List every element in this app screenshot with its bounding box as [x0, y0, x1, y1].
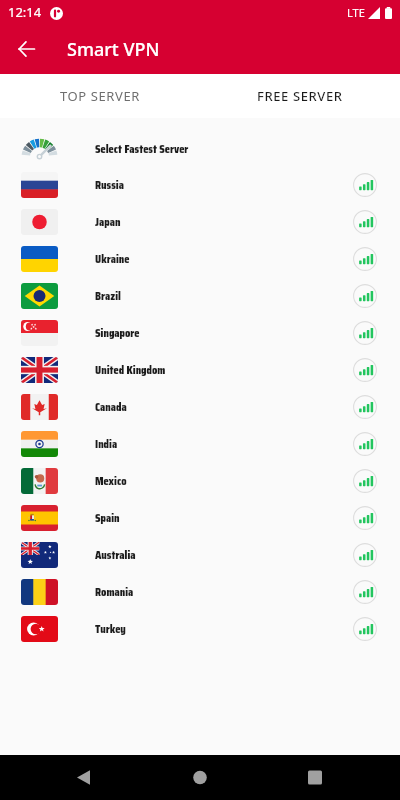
staticText: Mexico [95, 473, 127, 490]
button[interactable]: Mexico [0, 462, 400, 499]
button[interactable]: Signal Japan [346, 203, 384, 240]
staticText: United Kingdom [95, 362, 166, 379]
button[interactable]: India [0, 425, 400, 462]
staticText: Ukraine [95, 251, 130, 268]
staticText: Smart VPN [67, 37, 160, 62]
button[interactable]: United Kingdom [0, 351, 400, 388]
button[interactable]: Signal Brazil [346, 277, 384, 314]
staticText: Romania [95, 584, 134, 601]
button[interactable]: Signal Russia [346, 166, 384, 203]
button[interactable]: Brazil [0, 277, 400, 314]
button[interactable]: Australia [0, 536, 400, 573]
button[interactable]: Back [8, 31, 44, 67]
button[interactable]: Signal India [346, 425, 384, 462]
staticText: Japan [95, 214, 121, 231]
button[interactable]: Signal United Kingdom [346, 351, 384, 388]
button[interactable]: Romania [0, 573, 400, 610]
staticText: Canada [95, 399, 127, 416]
button[interactable]: Signal Spain [346, 499, 384, 536]
staticText: Australia [95, 547, 136, 564]
button[interactable]: Signal Ukraine [346, 240, 384, 277]
button[interactable]: Canada [0, 388, 400, 425]
button[interactable]: TOP SERVER [0, 74, 200, 118]
button[interactable]: Spain [0, 499, 400, 536]
staticText: 12:14 [8, 3, 42, 21]
button[interactable]: Signal Romania [346, 573, 384, 610]
staticText: Brazil [95, 288, 121, 305]
button[interactable]: Singapore [0, 314, 400, 351]
button[interactable]: Signal Canada [346, 388, 384, 425]
button[interactable]: Ukraine [0, 240, 400, 277]
button[interactable]: FREE SERVER [200, 74, 400, 118]
staticText: Spain [95, 510, 120, 527]
button[interactable]: Signal Singapore [346, 314, 384, 351]
button[interactable]: Russia [0, 166, 400, 203]
staticText: Turkey [95, 621, 126, 638]
staticText: India [95, 436, 118, 453]
staticText: Russia [95, 177, 124, 194]
button[interactable]: Signal Turkey [346, 610, 384, 647]
button[interactable]: Select Fastest Server [0, 129, 400, 166]
button[interactable]: Signal Australia [346, 536, 384, 573]
button[interactable]: Signal Mexico [346, 462, 384, 499]
staticText: FREE SERVER [257, 87, 343, 105]
staticText: Select Fastest Server [95, 141, 189, 158]
staticText: Singapore [95, 325, 140, 342]
button[interactable]: Japan [0, 203, 400, 240]
button[interactable]: Turkey [0, 610, 400, 647]
staticText: LTE [347, 5, 365, 20]
staticText: TOP SERVER [60, 87, 140, 105]
